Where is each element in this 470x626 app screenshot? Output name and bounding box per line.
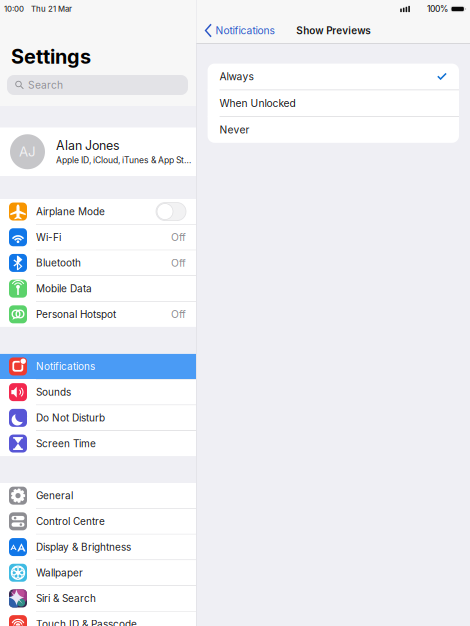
- staticText: Search: [28, 79, 63, 91]
- staticText: Thu 21 Mar: [31, 4, 72, 14]
- staticText: Do Not Disturb: [36, 412, 105, 424]
- button[interactable]: When Unlocked: [208, 90, 459, 116]
- button[interactable]: Touch ID & Passcode: [0, 612, 196, 626]
- staticText: Wallpaper: [36, 567, 83, 579]
- staticText: When Unlocked: [220, 97, 296, 109]
- staticText: 100%: [427, 4, 448, 14]
- button[interactable]: Display & Brightness: [0, 534, 196, 560]
- button[interactable]: Control Centre: [0, 509, 196, 534]
- staticText: Sounds: [36, 386, 71, 398]
- staticText: Bluetooth: [36, 257, 81, 269]
- button[interactable]: Airplane Mode: [0, 199, 196, 224]
- button[interactable]: Notifications: [0, 354, 196, 379]
- staticText: Screen Time: [36, 437, 96, 450]
- button[interactable]: Bluetooth: [0, 250, 196, 275]
- staticText: Alan Jones: [56, 138, 120, 153]
- button[interactable]: Screen Time: [0, 431, 196, 456]
- button[interactable]: General: [0, 483, 196, 508]
- button[interactable]: Search: [7, 75, 188, 95]
- staticText: Airplane Mode: [36, 205, 105, 218]
- staticText: Control Centre: [36, 515, 105, 527]
- staticText: Apple ID, iCloud, iTunes & App St…: [56, 155, 191, 165]
- staticText: Notifications: [216, 24, 275, 37]
- staticText: Display & Brightness: [36, 541, 131, 553]
- staticText: AJ: [19, 144, 36, 160]
- button[interactable]: Wi-Fi: [0, 225, 196, 250]
- button[interactable]: Wallpaper: [0, 560, 196, 585]
- staticText: Show Previews: [296, 24, 370, 37]
- button[interactable]: Siri & Search: [0, 586, 196, 611]
- staticText: Off: [171, 257, 186, 269]
- staticText: Always: [220, 70, 254, 83]
- staticText: Settings: [11, 44, 91, 68]
- staticText: Never: [220, 124, 250, 136]
- button[interactable]: Mobile Data: [0, 276, 196, 301]
- staticText: Siri & Search: [36, 592, 96, 604]
- staticText: General: [36, 490, 73, 502]
- staticText: Off: [171, 231, 186, 243]
- button[interactable]: Never: [208, 117, 459, 143]
- staticText: Notifications: [36, 360, 95, 372]
- button[interactable]: Do Not Disturb: [0, 405, 196, 430]
- staticText: 10:00: [4, 4, 24, 14]
- button[interactable]: AJ: [0, 127, 196, 176]
- button[interactable]: Personal Hotspot: [0, 302, 196, 327]
- button[interactable]: Always: [208, 64, 459, 90]
- staticText: Off: [171, 308, 186, 320]
- staticText: Touch ID & Passcode: [36, 618, 137, 626]
- staticText: Mobile Data: [36, 283, 92, 295]
- button[interactable]: Sounds: [0, 380, 196, 405]
- button[interactable]: Notifications: [197, 18, 281, 43]
- staticText: Personal Hotspot: [36, 308, 116, 320]
- staticText: Wi-Fi: [36, 231, 61, 243]
